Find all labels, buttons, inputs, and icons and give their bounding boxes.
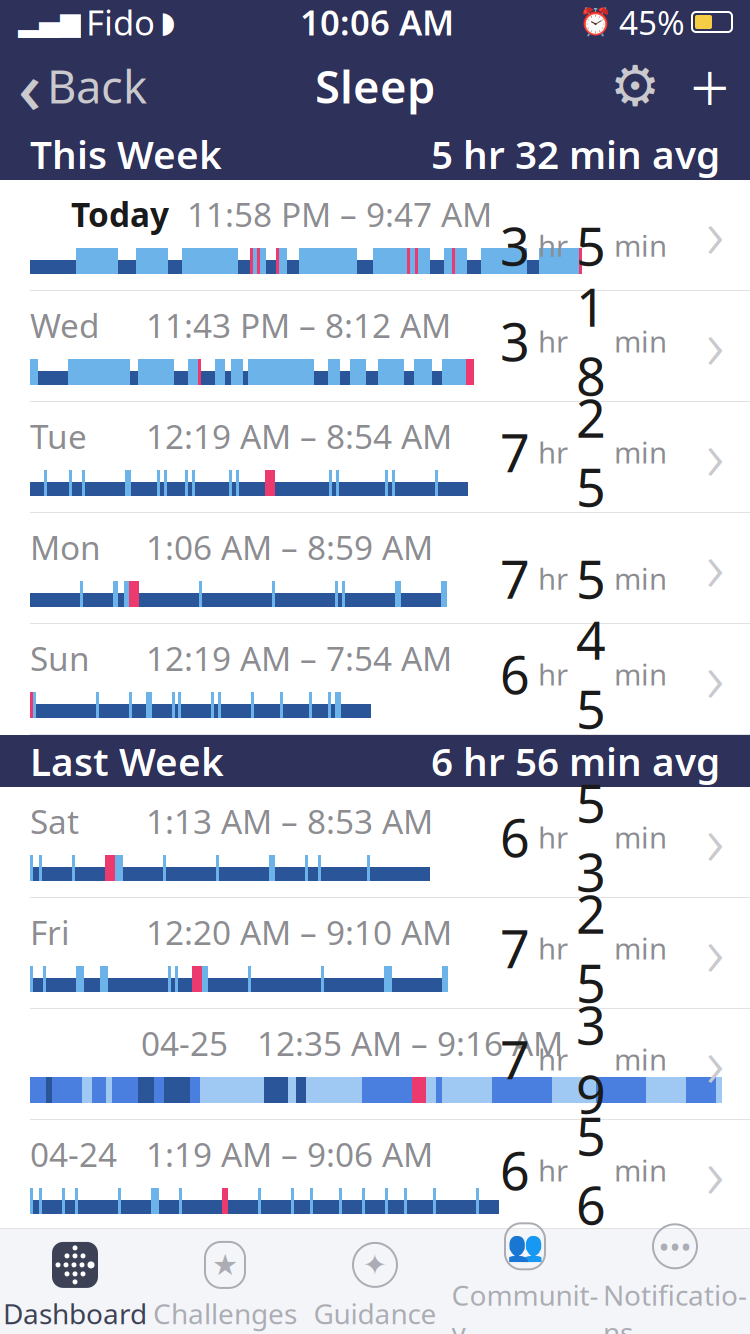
staticText: Fri xyxy=(30,910,70,954)
button[interactable]: Add xyxy=(670,46,750,126)
button[interactable]: ‹ xyxy=(0,46,165,126)
staticText: hr xyxy=(530,1039,576,1078)
staticText: 6 xyxy=(500,639,530,709)
staticText: 25 xyxy=(576,383,606,521)
staticText: min xyxy=(606,432,667,471)
staticText: › xyxy=(706,186,724,278)
staticText: min xyxy=(606,1039,667,1078)
staticText: Today xyxy=(71,192,169,236)
staticText: 6 xyxy=(500,1135,530,1205)
staticText: 18 xyxy=(576,272,606,410)
staticText: Sat xyxy=(30,799,79,843)
staticText: › xyxy=(706,630,724,722)
button[interactable]: Wed xyxy=(0,291,750,402)
button[interactable]: Sun xyxy=(0,624,750,735)
staticText: ▂▄▆ xyxy=(18,7,81,37)
staticText: › xyxy=(706,793,724,885)
staticText: 5 xyxy=(576,211,606,280)
staticText: › xyxy=(706,519,724,611)
staticText: Fido xyxy=(86,0,155,45)
button[interactable]: 04-25 xyxy=(0,1009,750,1120)
staticText: › xyxy=(706,297,724,389)
staticText: 3 xyxy=(500,306,530,376)
staticText: Community xyxy=(451,1276,598,1334)
staticText: 12:35 AM – 9:16 AM xyxy=(257,1021,563,1065)
staticText: 39 xyxy=(576,990,606,1128)
staticText: 7 xyxy=(500,417,530,487)
staticText: 7 xyxy=(500,544,530,613)
button[interactable]: 👥 xyxy=(450,1212,600,1334)
staticText: Dashboard xyxy=(3,1295,147,1332)
staticText: 12:19 AM – 7:54 AM xyxy=(146,636,452,680)
staticText: ••• xyxy=(658,1227,691,1266)
button[interactable]: ✦ xyxy=(300,1231,450,1332)
staticText: Back xyxy=(47,56,147,116)
staticText: 12:20 AM – 9:10 AM xyxy=(146,910,452,954)
staticText: ✦ xyxy=(362,1248,387,1282)
staticText: 45 xyxy=(576,605,606,743)
button[interactable]: Fri xyxy=(0,898,750,1009)
staticText: ⏰ xyxy=(579,7,612,37)
staticText: 1:13 AM – 8:53 AM xyxy=(146,799,433,843)
button[interactable]: Sat xyxy=(0,787,750,898)
staticText: hr xyxy=(530,559,576,598)
button[interactable]: Settings xyxy=(600,46,670,126)
staticText: Sun xyxy=(30,636,90,680)
button[interactable]: Dashboard xyxy=(0,1231,150,1332)
staticText: Sleep xyxy=(315,56,435,116)
staticText: ⚙ xyxy=(610,54,660,118)
staticText: Tue xyxy=(30,414,87,458)
staticText: min xyxy=(606,817,667,856)
button[interactable]: Mon xyxy=(0,513,750,624)
button[interactable]: ★ xyxy=(150,1231,300,1332)
staticText: 11:58 PM – 9:47 AM xyxy=(187,192,492,236)
staticText: 5 hr 32 min avg xyxy=(431,128,720,180)
staticText: hr xyxy=(530,321,576,360)
staticText: 53 xyxy=(576,768,606,906)
staticText: › xyxy=(706,1015,724,1107)
button[interactable]: Tue xyxy=(0,402,750,513)
staticText: Notifications xyxy=(603,1276,747,1334)
staticText: 👥 xyxy=(506,1230,543,1263)
staticText: min xyxy=(606,928,667,967)
staticText: Mon xyxy=(30,525,101,569)
staticText: Last Week xyxy=(30,735,224,787)
staticText: 6 xyxy=(500,802,530,872)
staticText: hr xyxy=(530,1150,576,1189)
staticText: min xyxy=(606,559,667,598)
staticText: + xyxy=(690,40,730,132)
staticText: ◗ xyxy=(160,5,175,39)
staticText: ★ xyxy=(212,1248,238,1282)
staticText: hr xyxy=(530,226,576,265)
staticText: hr xyxy=(530,432,576,471)
staticText: 12:19 AM – 8:54 AM xyxy=(146,414,452,458)
staticText: › xyxy=(706,1126,724,1218)
staticText: 1:19 AM – 9:06 AM xyxy=(146,1132,433,1176)
button[interactable]: 04-24 xyxy=(0,1120,750,1231)
staticText: 6 hr 56 min avg xyxy=(431,735,720,787)
staticText: Challenges xyxy=(153,1295,297,1332)
staticText: 3 xyxy=(500,211,530,280)
staticText: 10:06 AM xyxy=(300,0,454,45)
staticText: hr xyxy=(530,817,576,856)
staticText: 5 xyxy=(576,544,606,613)
staticText: 25 xyxy=(576,879,606,1017)
staticText: This Week xyxy=(30,128,222,180)
staticText: › xyxy=(706,408,724,500)
button[interactable]: Today xyxy=(0,180,750,291)
staticText: 1:06 AM – 8:59 AM xyxy=(146,525,433,569)
staticText: min xyxy=(606,1150,667,1189)
staticText: 45% xyxy=(619,0,685,44)
staticText: 11:43 PM – 8:12 AM xyxy=(146,303,451,347)
staticText: hr xyxy=(530,654,576,693)
staticText: hr xyxy=(530,928,576,967)
button[interactable]: ••• xyxy=(600,1212,750,1334)
staticText: 04-24 xyxy=(30,1132,117,1176)
staticText: min xyxy=(606,226,667,265)
staticText: 04-25 xyxy=(141,1021,228,1065)
staticText: 7 xyxy=(500,913,530,983)
staticText: Guidance xyxy=(313,1295,436,1332)
staticText: 7 xyxy=(500,1024,530,1094)
staticText: 56 xyxy=(576,1101,606,1239)
staticText: min xyxy=(606,654,667,693)
